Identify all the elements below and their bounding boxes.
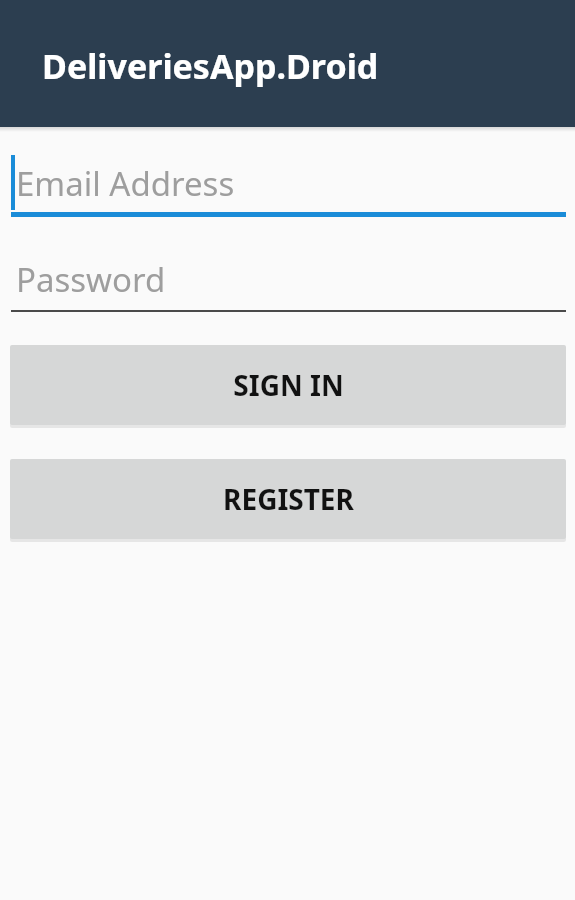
staticText: Password	[16, 257, 166, 302]
staticText: SIGN IN	[233, 366, 344, 404]
staticText: Email Address	[16, 161, 235, 206]
button[interactable]: REGISTER	[10, 459, 566, 539]
button[interactable]: SIGN IN	[10, 345, 566, 425]
button[interactable]: Email Address	[0, 150, 575, 217]
button[interactable]: Password	[0, 250, 575, 312]
staticText: DeliveriesApp.Droid	[42, 43, 379, 89]
staticText: REGISTER	[223, 480, 354, 518]
